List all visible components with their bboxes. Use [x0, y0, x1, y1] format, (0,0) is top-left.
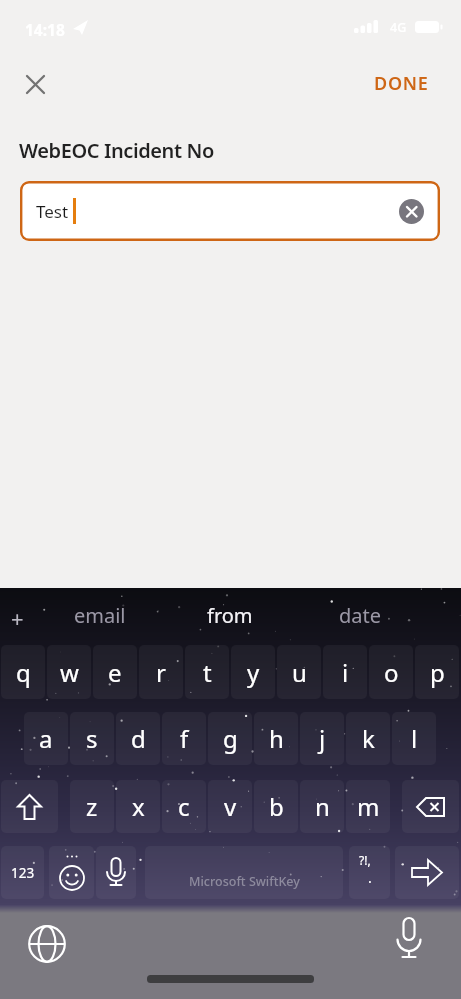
button[interactable]: ?!,: [349, 846, 390, 899]
button[interactable]: [27, 924, 67, 964]
staticText: q: [16, 656, 31, 689]
button[interactable]: 123: [1, 846, 44, 899]
button[interactable]: from: [170, 594, 290, 636]
staticText: w: [60, 656, 79, 689]
button[interactable]: x: [116, 780, 160, 833]
staticText: c: [178, 790, 190, 823]
staticText: l: [411, 722, 418, 755]
staticText: 14:18: [25, 19, 65, 37]
staticText: 123: [11, 864, 35, 882]
staticText: .: [368, 868, 372, 887]
button[interactable]: [96, 846, 136, 899]
button[interactable]: l: [392, 712, 436, 765]
staticText: a: [39, 722, 53, 755]
staticText: e: [108, 656, 122, 689]
button[interactable]: y: [231, 645, 275, 699]
button[interactable]: w: [47, 645, 91, 699]
staticText: m: [357, 790, 380, 823]
button[interactable]: e: [93, 645, 137, 699]
button[interactable]: g: [208, 712, 252, 765]
button[interactable]: j: [300, 712, 344, 765]
staticText: +: [11, 603, 24, 633]
button[interactable]: f: [162, 712, 206, 765]
staticText: DONE: [374, 71, 429, 96]
staticText: ?!,: [359, 852, 371, 868]
button[interactable]: i: [323, 645, 367, 699]
button[interactable]: date: [300, 594, 420, 636]
button[interactable]: [391, 917, 427, 961]
button[interactable]: z: [70, 780, 114, 833]
staticText: n: [315, 790, 330, 823]
staticText: from: [207, 602, 253, 629]
staticText: s: [86, 722, 98, 755]
button[interactable]: +: [2, 598, 32, 638]
staticText: g: [223, 722, 238, 755]
staticText: r: [156, 656, 166, 689]
staticText: k: [362, 722, 375, 755]
staticText: Test: [36, 200, 69, 223]
button[interactable]: c: [162, 780, 206, 833]
button[interactable]: b: [254, 780, 298, 833]
button[interactable]: k: [346, 712, 390, 765]
button[interactable]: a: [24, 712, 68, 765]
staticText: i: [342, 656, 349, 689]
button[interactable]: [49, 846, 94, 899]
button[interactable]: [1, 780, 58, 833]
button[interactable]: h: [254, 712, 298, 765]
button[interactable]: t: [185, 645, 229, 699]
staticText: t: [203, 656, 212, 689]
button[interactable]: [16, 65, 54, 103]
staticText: date: [339, 602, 382, 629]
button[interactable]: Microsoft SwiftKey: [145, 846, 343, 899]
staticText: d: [131, 722, 146, 755]
staticText: 4G: [390, 19, 407, 35]
staticText: j: [319, 722, 326, 755]
button[interactable]: DONE: [365, 68, 437, 98]
button[interactable]: r: [139, 645, 183, 699]
button[interactable]: o: [369, 645, 413, 699]
staticText: p: [430, 656, 445, 689]
staticText: Microsoft SwiftKey: [189, 873, 300, 890]
staticText: y: [247, 656, 260, 689]
staticText: u: [292, 656, 307, 689]
staticText: v: [224, 790, 237, 823]
staticText: WebEOC Incident No: [19, 137, 214, 163]
button[interactable]: [395, 846, 459, 899]
staticText: x: [132, 790, 145, 823]
staticText: h: [269, 722, 284, 755]
button[interactable]: n: [300, 780, 344, 833]
staticText: o: [384, 656, 399, 689]
button[interactable]: email: [40, 594, 160, 636]
button[interactable]: u: [277, 645, 321, 699]
button[interactable]: s: [70, 712, 114, 765]
button[interactable]: m: [346, 780, 390, 833]
button[interactable]: [402, 780, 459, 833]
staticText: z: [86, 790, 98, 823]
button[interactable]: p: [415, 645, 459, 699]
button[interactable]: v: [208, 780, 252, 833]
staticText: email: [74, 602, 126, 629]
button[interactable]: d: [116, 712, 160, 765]
button[interactable]: [399, 199, 424, 224]
staticText: f: [180, 722, 189, 755]
button[interactable]: q: [1, 645, 45, 699]
staticText: b: [269, 790, 284, 823]
